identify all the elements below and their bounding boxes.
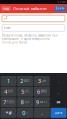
- staticText: 6: [37, 88, 40, 95]
- staticText: Назад: [3, 7, 10, 10]
- button[interactable]: 1: [0, 76, 16, 86]
- button[interactable]: 3: [34, 76, 50, 86]
- staticText: +: [26, 111, 28, 115]
- staticText: 3: [38, 77, 41, 84]
- staticText: GHI: [8, 90, 13, 93]
- button[interactable]: *#: [0, 108, 16, 118]
- staticText: 8: [21, 99, 24, 106]
- button[interactable]: .: [34, 108, 50, 118]
- button[interactable]: 9: [34, 97, 50, 107]
- staticText: ABC: [24, 79, 30, 83]
- button[interactable]: Войти: [54, 6, 66, 11]
- staticText: +7: [4, 17, 8, 20]
- staticText: 4: [4, 88, 7, 95]
- staticText: *#: [5, 109, 11, 116]
- staticText: Введите номер телефона, указанный при ре…: [2, 34, 58, 44]
- button[interactable]: 4: [0, 87, 16, 96]
- staticText: Далее: [55, 111, 62, 115]
- staticText: -: [58, 78, 59, 84]
- button[interactable]: 0: [17, 108, 33, 118]
- staticText: WXYZ: [40, 100, 48, 104]
- button[interactable]: Далее: [50, 108, 66, 118]
- staticText: PQRS: [7, 100, 14, 104]
- staticText: 7: [3, 99, 6, 106]
- staticText: 5: [21, 88, 24, 95]
- staticText: 2: [20, 77, 23, 84]
- button[interactable]: 2: [17, 76, 33, 86]
- button[interactable]: 8: [17, 97, 33, 107]
- button[interactable]: 5: [17, 87, 33, 96]
- staticText: 0: [22, 109, 25, 116]
- button[interactable]: E-mail: [2, 25, 65, 31]
- staticText: 9: [36, 99, 39, 106]
- staticText: Личный кабинет: [13, 6, 47, 11]
- staticText: DEF: [42, 79, 46, 83]
- button[interactable]: Backspace: [50, 97, 66, 107]
- button[interactable]: +7: [2, 15, 65, 22]
- staticText: 1: [7, 77, 10, 84]
- staticText: .: [41, 109, 42, 116]
- staticText: Войти: [55, 7, 64, 10]
- staticText: E-mail: [4, 26, 11, 30]
- button[interactable]: 6: [34, 87, 50, 96]
- staticText: JKL: [25, 90, 29, 93]
- staticText: ,: [58, 89, 59, 94]
- button[interactable]: Назад: [1, 6, 11, 11]
- staticText: MNO: [41, 90, 47, 93]
- staticText: TUV: [24, 100, 29, 104]
- button[interactable]: 7: [0, 97, 16, 107]
